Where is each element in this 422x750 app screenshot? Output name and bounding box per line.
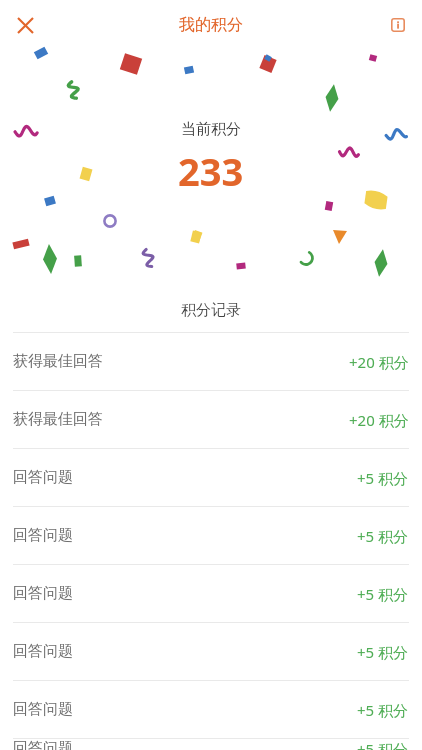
staticText: 我的积分 <box>179 15 243 35</box>
staticText: +20 积分 <box>349 352 409 372</box>
staticText: 233 <box>178 145 244 197</box>
button[interactable]: 回答问题 <box>0 507 422 564</box>
staticText: +5 积分 <box>357 526 409 546</box>
staticText: 回答问题 <box>13 700 73 719</box>
staticText: 回答问题 <box>13 642 73 661</box>
staticText: +20 积分 <box>349 410 409 430</box>
staticText: +5 积分 <box>357 739 409 750</box>
staticText: 获得最佳回答 <box>13 352 103 371</box>
staticText: +5 积分 <box>357 468 409 488</box>
staticText: 当前积分 <box>181 120 241 139</box>
button[interactable]: 获得最佳回答 <box>0 391 422 448</box>
staticText: 获得最佳回答 <box>13 410 103 429</box>
button[interactable]: Close <box>6 6 44 44</box>
staticText: +5 积分 <box>357 584 409 604</box>
staticText: 回答问题 <box>13 739 73 750</box>
button[interactable]: 回答问题 <box>0 449 422 506</box>
button[interactable]: 获得最佳回答 <box>0 333 422 390</box>
staticText: +5 积分 <box>357 700 409 720</box>
staticText: 回答问题 <box>13 584 73 603</box>
staticText: 回答问题 <box>13 526 73 545</box>
staticText: 积分记录 <box>181 301 241 320</box>
button[interactable]: 回答问题 <box>0 739 422 750</box>
button[interactable]: 回答问题 <box>0 681 422 738</box>
button[interactable]: Info <box>381 8 415 42</box>
staticText: +5 积分 <box>357 642 409 662</box>
button[interactable]: 回答问题 <box>0 565 422 622</box>
button[interactable]: 回答问题 <box>0 623 422 680</box>
staticText: 回答问题 <box>13 468 73 487</box>
